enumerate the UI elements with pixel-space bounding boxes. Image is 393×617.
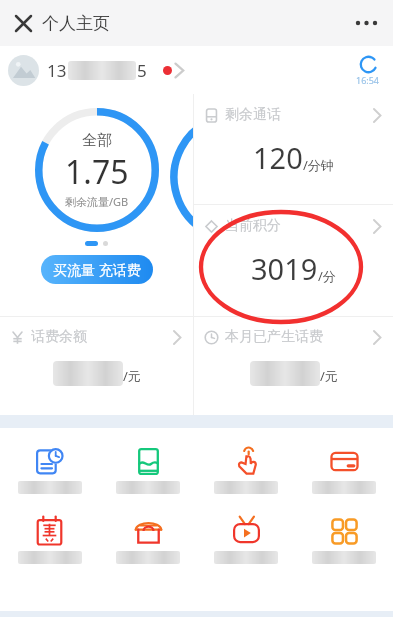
button[interactable]: Close [4,4,42,42]
staticText: /分钟 [303,156,334,174]
button[interactable]: Store [99,516,197,564]
button[interactable]: 本月已产生话费 [194,317,393,415]
button[interactable]: More [295,516,393,564]
staticText: 剩余流量/GB [65,194,129,209]
button[interactable]: More options [345,2,387,44]
staticText: /元 [123,367,141,385]
staticText: 本月已产生话费 [225,328,323,346]
staticText: /分 [318,267,336,285]
button[interactable]: 买流量 充话费 [41,255,153,284]
staticText: /元 [320,367,338,385]
staticText: 3019 [251,249,318,288]
button[interactable]: Offers [0,516,99,564]
button[interactable]: 当前积分 [194,205,393,316]
button[interactable]: 话费余额 [0,317,193,415]
staticText: 话费余额 [31,328,87,346]
staticText: 13 [47,59,67,82]
button[interactable]: Refresh [356,55,380,86]
button[interactable]: 13 [8,55,184,86]
staticText: 16:54 [356,74,380,86]
button[interactable]: Self service [197,446,295,494]
staticText: 个人主页 [42,13,110,34]
button[interactable]: Video [197,516,295,564]
staticText: 全部 [82,131,112,150]
button[interactable]: 剩余通话 [194,94,393,204]
button[interactable]: Recharge card [295,446,393,494]
staticText: 5 [137,59,147,82]
staticText: 120 [253,138,303,177]
button[interactable]: Bill history [0,446,99,494]
staticText: 剩余通话 [225,106,281,124]
button[interactable]: Data usage [99,446,197,494]
staticText: 当前积分 [225,217,281,235]
staticText: 买流量 充话费 [53,260,141,279]
staticText: 1.75 [65,150,129,194]
